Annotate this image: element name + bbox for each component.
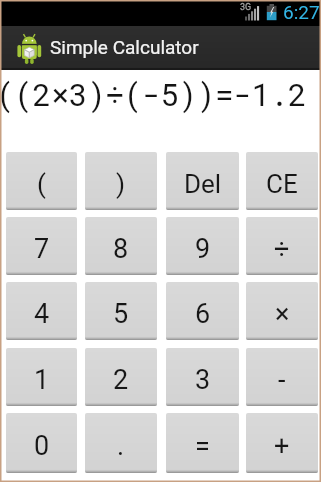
button[interactable]: Del: [166, 152, 239, 210]
staticText: 0: [34, 430, 50, 462]
button[interactable]: 6: [166, 282, 239, 340]
button[interactable]: ÷: [246, 217, 318, 275]
staticText: +: [274, 430, 290, 462]
staticText: .: [117, 430, 125, 462]
staticText: ): [116, 169, 126, 199]
button[interactable]: .: [85, 413, 157, 473]
button[interactable]: 2: [85, 348, 157, 406]
staticText: ((2×3)÷(-5))=-1.2: [0, 74, 307, 115]
button[interactable]: 7: [6, 217, 77, 275]
button[interactable]: (: [6, 152, 77, 210]
button[interactable]: -: [246, 348, 318, 406]
staticText: Simple Calculator: [50, 36, 199, 58]
button[interactable]: 5: [85, 282, 157, 340]
staticText: -: [278, 364, 286, 396]
staticText: 8: [113, 233, 129, 265]
staticText: 2: [113, 364, 129, 396]
button[interactable]: =: [166, 413, 239, 473]
staticText: 3: [195, 364, 211, 396]
staticText: 5: [113, 298, 129, 330]
button[interactable]: 1: [6, 348, 77, 406]
staticText: 3G: [240, 2, 252, 13]
staticText: 6:27: [283, 1, 320, 23]
staticText: ÷: [274, 233, 290, 265]
staticText: 4: [34, 298, 50, 330]
button[interactable]: 4: [6, 282, 77, 340]
staticText: 9: [195, 233, 211, 265]
staticText: CE: [266, 169, 298, 199]
button[interactable]: ×: [246, 282, 318, 340]
staticText: 7: [34, 233, 50, 265]
staticText: ×: [275, 298, 290, 330]
button[interactable]: CE: [246, 152, 318, 210]
button[interactable]: ): [85, 152, 157, 210]
staticText: 1: [34, 364, 50, 396]
button[interactable]: 8: [85, 217, 157, 275]
staticText: 6: [195, 298, 211, 330]
button[interactable]: 0: [6, 413, 77, 473]
staticText: Del: [184, 169, 222, 199]
button[interactable]: +: [246, 413, 318, 473]
staticText: (: [37, 169, 46, 199]
button[interactable]: 3: [166, 348, 239, 406]
staticText: =: [195, 430, 210, 462]
button[interactable]: 9: [166, 217, 239, 275]
